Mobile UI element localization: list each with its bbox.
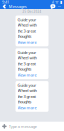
staticText: 25 Dec 2024 (22, 10, 41, 13)
staticText: Guide your Wheel with (17, 17, 36, 28)
staticText: Type a message (9, 124, 37, 129)
staticText: Guide your Wheel with (17, 50, 36, 60)
staticText: View more (17, 72, 36, 78)
staticText: Messages (9, 4, 27, 9)
staticText: ıl ᯤ ▮ (52, 0, 62, 5)
staticText: View more (17, 39, 36, 45)
staticText: the 3 great thoughts (17, 61, 35, 72)
staticText: Guide your Wheel with (17, 83, 36, 93)
staticText: 9:41 (2, 0, 9, 5)
staticText: the 3 great thoughts (17, 28, 35, 39)
staticText: the 3 great thoughts (17, 94, 35, 104)
staticText: View more (17, 105, 36, 110)
